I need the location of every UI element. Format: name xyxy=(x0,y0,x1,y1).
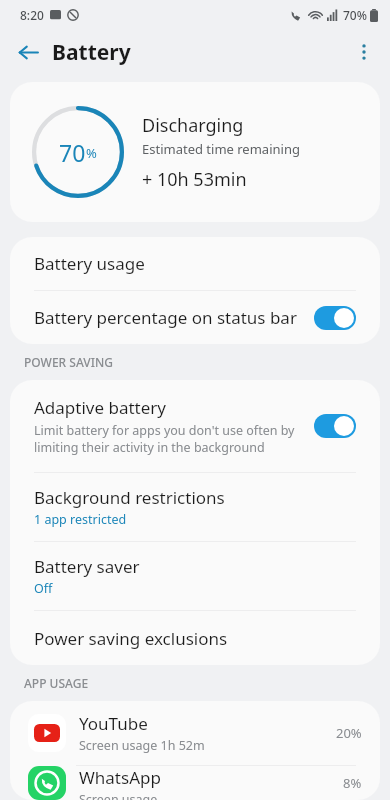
staticText: 1 app restricted xyxy=(34,511,127,528)
staticText: 70% xyxy=(343,7,367,23)
staticText: 8:20 xyxy=(20,7,44,23)
staticText: + 10h 53min xyxy=(142,167,247,192)
staticText: Battery usage xyxy=(34,252,145,275)
staticText: Off xyxy=(34,580,53,597)
staticText: APP USAGE xyxy=(24,675,89,691)
staticText: YouTube xyxy=(79,712,148,735)
button[interactable]: Background restrictions xyxy=(10,473,380,541)
staticText: Estimated time remaining xyxy=(142,140,300,158)
staticText: Screen usage xyxy=(79,791,158,800)
staticText: WhatsApp xyxy=(79,766,161,789)
button[interactable]: Battery usage xyxy=(10,237,380,290)
staticText: Screen usage 1h 52m xyxy=(79,737,205,754)
staticText: Battery xyxy=(52,38,131,67)
staticText: Discharging xyxy=(142,113,244,138)
button[interactable]: Adaptive battery xyxy=(10,380,380,472)
staticText: 8% xyxy=(343,774,362,792)
button[interactable]: YouTube xyxy=(10,701,380,765)
staticText: Background restrictions xyxy=(34,486,225,509)
staticText: % xyxy=(86,144,97,162)
button[interactable]: WhatsApp xyxy=(10,766,380,800)
staticText: Power saving exclusions xyxy=(34,627,228,650)
staticText: 70 xyxy=(59,137,86,168)
button[interactable]: More options xyxy=(342,30,386,74)
button[interactable]: Power saving exclusions xyxy=(10,611,380,665)
button[interactable]: Back xyxy=(8,32,48,72)
staticText: Limit battery for apps you don't use oft… xyxy=(34,422,302,456)
button[interactable]: Battery percentage on status bar xyxy=(10,291,380,344)
staticText: Adaptive battery xyxy=(34,396,167,419)
staticText: Battery percentage on status bar xyxy=(34,306,314,329)
button[interactable]: 70 xyxy=(10,82,380,222)
button[interactable]: Battery saver xyxy=(10,542,380,610)
staticText: 20% xyxy=(336,724,362,742)
staticText: POWER SAVING xyxy=(24,354,113,370)
staticText: Battery saver xyxy=(34,555,140,578)
